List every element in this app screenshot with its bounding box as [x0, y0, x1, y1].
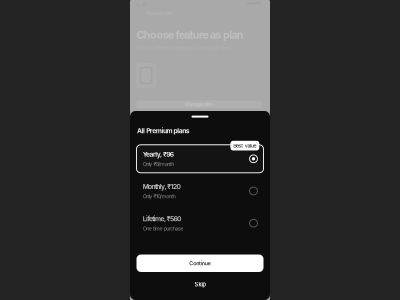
staticText: Yearly, ₹96	[143, 150, 174, 158]
button[interactable]: Yearly, ₹96	[136, 145, 263, 173]
staticText: Manage plan	[185, 101, 213, 107]
staticText: All Premium plans	[137, 127, 190, 135]
staticText: Only ₹8/month	[143, 161, 174, 167]
button[interactable]: Continue	[136, 254, 263, 272]
staticText: Manage plan	[146, 10, 174, 16]
button[interactable]: Skip	[130, 278, 270, 291]
staticText: Continue	[189, 260, 211, 266]
staticText: Only ₹10/month	[143, 193, 176, 200]
staticText: One time purchase	[143, 225, 183, 232]
staticText: Best value	[233, 142, 256, 149]
staticText: Lifetime, ₹560	[143, 215, 181, 223]
button[interactable]: Monthly, ₹120	[136, 177, 263, 205]
button[interactable]: Best value	[230, 141, 259, 150]
button[interactable]: Lifetime, ₹560	[136, 209, 263, 237]
staticText: Skip	[194, 281, 205, 288]
staticText: Choose feature as plan	[136, 28, 244, 41]
staticText: Monthly, ₹120	[143, 182, 180, 191]
